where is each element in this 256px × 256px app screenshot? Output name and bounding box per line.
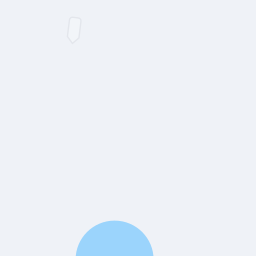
button[interactable]: Start [76,221,154,256]
button[interactable]: Compose [68,17,80,43]
